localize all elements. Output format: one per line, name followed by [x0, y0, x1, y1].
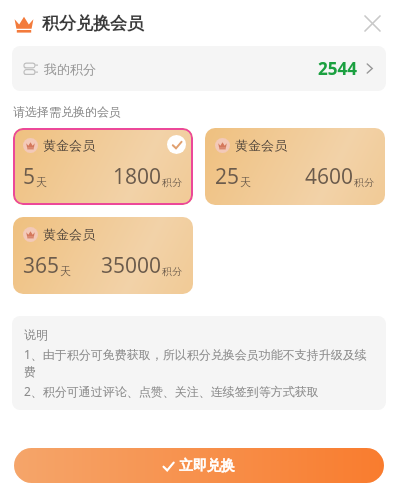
staticText: 1、由于积分可免费获取，所以积分兑换会员功能不支持升级及续费 [24, 346, 374, 380]
staticText: 我的积分 [44, 61, 96, 77]
staticText: 立即兑换 [179, 457, 235, 475]
staticText: 5 [23, 162, 36, 191]
staticText: 2、积分可通过评论、点赞、关注、连续签到等方式获取 [24, 383, 319, 399]
staticText: 天 [36, 175, 47, 189]
button[interactable]: 我的积分 [12, 46, 386, 91]
staticText: 365 [23, 251, 60, 280]
staticText: 请选择需兑换的会员 [13, 104, 121, 119]
button[interactable]: 黄金会员 [13, 128, 193, 205]
staticText: 积分 [162, 265, 182, 278]
staticText: 黄金会员 [235, 137, 287, 153]
staticText: 35000 [101, 251, 162, 280]
staticText: 说明 [24, 327, 48, 342]
staticText: 积分 [354, 176, 374, 189]
staticText: 积分 [162, 176, 182, 189]
staticText: 积分兑换会员 [42, 13, 144, 34]
button[interactable]: 黄金会员 [205, 128, 385, 205]
staticText: 4600 [305, 162, 354, 191]
staticText: 1800 [113, 162, 162, 191]
staticText: 黄金会员 [43, 137, 95, 153]
staticText: 黄金会员 [43, 226, 95, 242]
staticText: 天 [240, 175, 251, 189]
button[interactable]: Close [356, 7, 388, 39]
staticText: 天 [60, 264, 71, 278]
staticText: 25 [215, 162, 240, 191]
button[interactable]: 立即兑换 [14, 448, 384, 483]
staticText: 2544 [318, 57, 357, 80]
button[interactable]: 黄金会员 [13, 217, 193, 294]
